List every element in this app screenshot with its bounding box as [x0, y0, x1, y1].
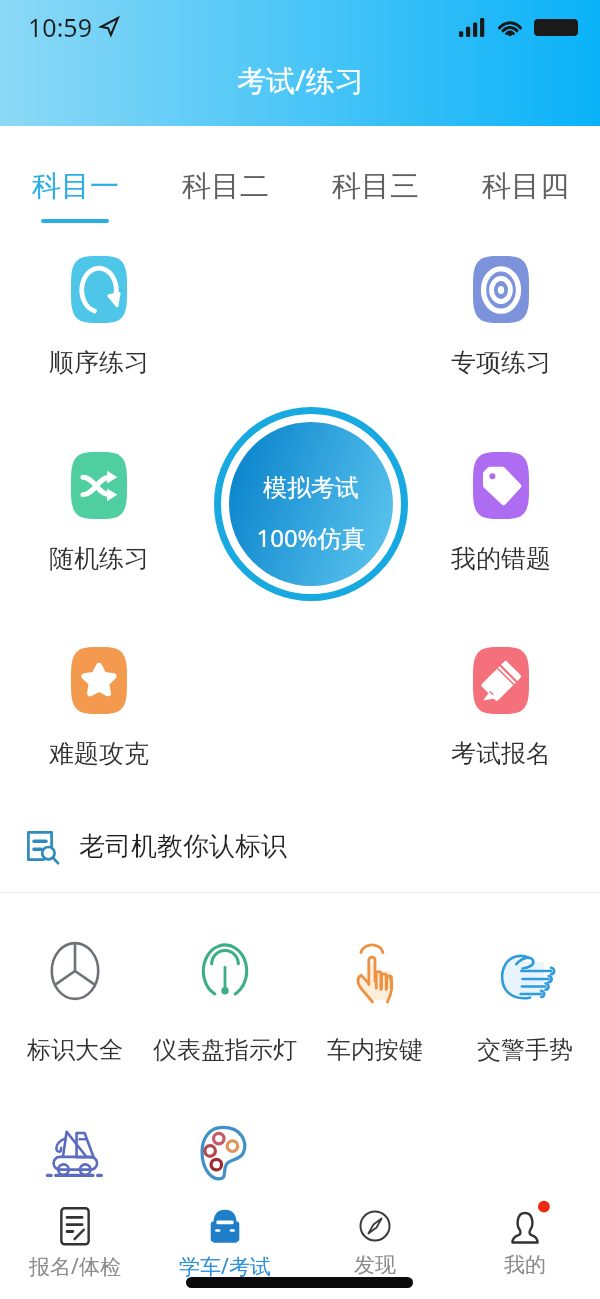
button[interactable]: 我的: [450, 1184, 600, 1299]
button[interactable]: 报名/体检: [0, 1184, 150, 1299]
staticText: 考试报名: [451, 738, 551, 769]
button[interactable]: [450, 1120, 600, 1215]
staticText: 标识大全: [27, 1035, 123, 1065]
staticText: 学车/考试: [179, 1252, 271, 1281]
button[interactable]: 交警手势: [450, 940, 600, 1065]
button[interactable]: 我的错题: [431, 452, 571, 574]
button[interactable]: [150, 1120, 300, 1215]
button[interactable]: 学车/考试: [150, 1184, 300, 1299]
button[interactable]: [300, 1120, 450, 1215]
button[interactable]: 随机练习: [29, 452, 169, 574]
button[interactable]: 难题攻克: [29, 647, 169, 769]
staticText: 科目一: [32, 168, 119, 205]
staticText: 交警手势: [477, 1035, 573, 1065]
staticText: 科目三: [332, 168, 419, 205]
button[interactable]: 顺序练习: [29, 256, 169, 378]
staticText: 顺序练习: [49, 347, 149, 378]
staticText: 我的: [504, 1252, 546, 1278]
button[interactable]: 考试报名: [431, 647, 571, 769]
staticText: 我的错题: [451, 543, 551, 574]
staticText: 考试/练习: [237, 60, 364, 100]
staticText: 老司机教你认标识: [79, 830, 287, 863]
staticText: 发现: [354, 1252, 396, 1278]
staticText: 科目二: [182, 168, 269, 205]
button[interactable]: 老司机教你认标识: [22, 815, 600, 877]
staticText: 仪表盘指示灯: [153, 1035, 297, 1065]
staticText: 车内按键: [327, 1035, 423, 1065]
staticText: 专项练习: [451, 347, 551, 378]
staticText: 100%仿真: [256, 521, 366, 554]
staticText: 模拟考试: [263, 473, 359, 503]
button[interactable]: 专项练习: [431, 256, 571, 378]
button[interactable]: 发现: [300, 1184, 450, 1299]
button[interactable]: 仪表盘指示灯: [150, 940, 300, 1065]
staticText: 报名/体检: [29, 1252, 121, 1281]
button[interactable]: 科目四: [450, 126, 600, 226]
staticText: 难题攻克: [49, 738, 149, 769]
button[interactable]: 模拟考试: [214, 407, 408, 601]
staticText: 10:59: [28, 10, 92, 44]
button[interactable]: 科目三: [300, 126, 450, 226]
staticText: 科目四: [482, 168, 569, 205]
button[interactable]: 科目二: [150, 126, 300, 226]
button[interactable]: 科目一: [0, 126, 150, 226]
staticText: 随机练习: [49, 543, 149, 574]
button[interactable]: [0, 1120, 150, 1215]
button[interactable]: 标识大全: [0, 940, 150, 1065]
button[interactable]: 车内按键: [300, 940, 450, 1065]
